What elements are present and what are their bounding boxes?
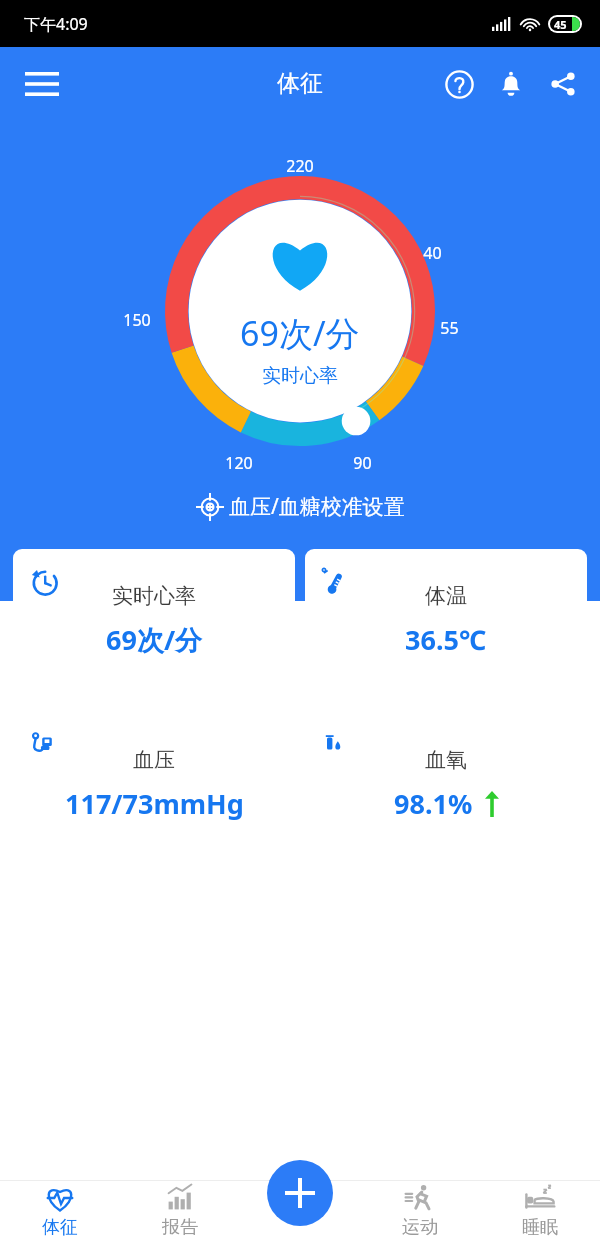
staticText: 血压 <box>133 747 175 773</box>
staticText: 40 <box>423 242 442 264</box>
staticText: 报告 <box>162 1216 198 1239</box>
button[interactable]: Notifications <box>488 61 534 107</box>
staticText: 69次/分 <box>240 310 360 356</box>
button[interactable]: Help <box>436 61 482 107</box>
button[interactable]: 血氧 <box>305 713 587 865</box>
staticText: 120 <box>225 452 253 474</box>
staticText: 45 <box>554 17 567 31</box>
staticText: 体温 <box>425 583 467 609</box>
staticText: 实时心率 <box>262 364 338 388</box>
button[interactable]: Menu <box>14 56 70 112</box>
button[interactable]: 血压 <box>13 713 295 865</box>
button[interactable]: 实时心率 <box>13 549 295 701</box>
staticText: 运动 <box>402 1216 438 1239</box>
button[interactable]: 报告 <box>120 1179 240 1243</box>
staticText: 实时心率 <box>112 583 196 609</box>
staticText: 睡眠 <box>522 1216 558 1239</box>
staticText: 98.1% <box>394 785 473 822</box>
staticText: 体征 <box>277 69 323 98</box>
staticText: 117/73mmHg <box>65 785 244 822</box>
staticText: 体征 <box>42 1216 78 1239</box>
staticText: 220 <box>286 155 314 177</box>
button[interactable]: 运动 <box>360 1179 480 1243</box>
button[interactable]: 体征 <box>0 1179 120 1243</box>
button[interactable]: 血压/血糖校准设置 <box>186 487 415 526</box>
staticText: 下午4:09 <box>24 13 88 35</box>
button[interactable]: 睡眠 <box>480 1179 600 1243</box>
button[interactable]: Add <box>267 1160 333 1226</box>
staticText: 36.5℃ <box>405 621 487 658</box>
staticText: 血压/血糖校准设置 <box>229 492 405 521</box>
button[interactable]: Share <box>540 61 586 107</box>
staticText: 90 <box>353 452 372 474</box>
staticText: 69次/分 <box>106 621 203 658</box>
staticText: 血氧 <box>425 747 467 773</box>
button[interactable]: 体温 <box>305 549 587 701</box>
staticText: 55 <box>440 317 459 339</box>
staticText: 150 <box>123 309 151 331</box>
